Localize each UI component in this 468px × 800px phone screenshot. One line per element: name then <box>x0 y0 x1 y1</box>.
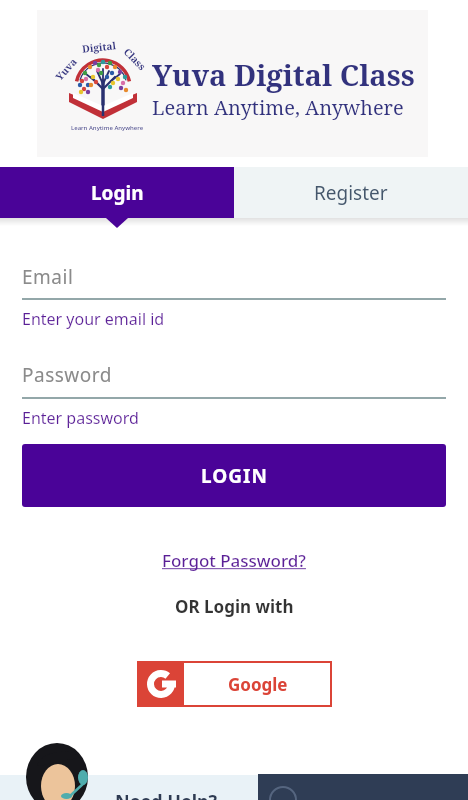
staticText: LOGIN <box>201 463 268 489</box>
staticText: Yuva <box>52 55 80 83</box>
button[interactable] <box>258 774 468 800</box>
button[interactable]: Register <box>234 167 468 218</box>
button[interactable] <box>20 740 100 800</box>
staticText: Enter your email id <box>22 308 165 330</box>
staticText: Yuva Digital Class <box>152 55 415 94</box>
staticText: Register <box>314 180 388 206</box>
staticText: OR Login with <box>175 595 294 618</box>
staticText: Forgot Password? <box>162 549 306 572</box>
button[interactable]: Login <box>0 167 234 218</box>
staticText: Enter password <box>22 407 139 429</box>
staticText: Need Help? <box>115 789 218 800</box>
staticText: Learn Anytime, Anywhere <box>152 94 404 121</box>
button[interactable]: LOGIN <box>22 444 446 507</box>
button[interactable]: Forgot Password? <box>162 549 306 572</box>
button[interactable]: Google <box>137 661 332 707</box>
staticText: Learn Anytime Anywhere <box>71 124 144 132</box>
staticText: Google <box>228 673 288 696</box>
staticText: Email <box>22 264 74 290</box>
staticText: Digital <box>81 38 117 56</box>
staticText: Password <box>22 362 112 388</box>
staticText: Class <box>121 45 149 73</box>
staticText: Login <box>91 180 144 206</box>
